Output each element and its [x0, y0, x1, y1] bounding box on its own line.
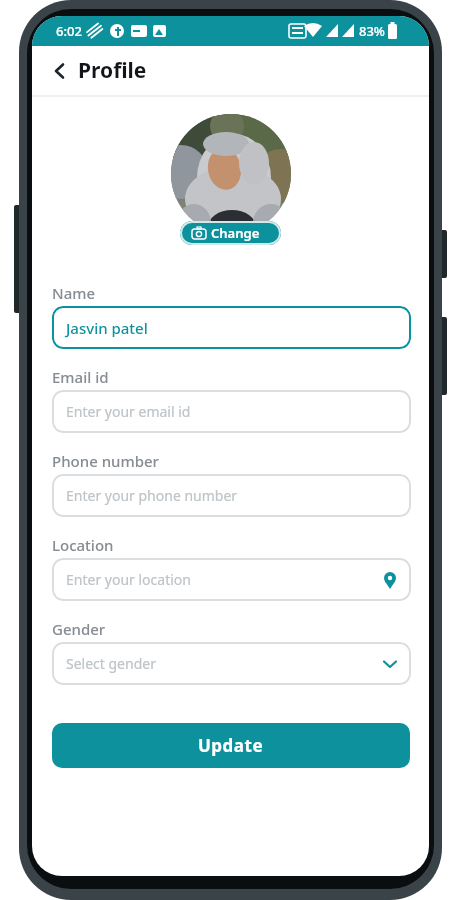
staticText: Enter your phone number — [66, 486, 238, 505]
staticText: Location — [52, 535, 114, 555]
staticText: Name — [52, 283, 96, 303]
staticText: Enter your location — [66, 570, 191, 589]
staticText: Change — [211, 224, 260, 242]
button[interactable]: Jasvin patel — [52, 306, 411, 349]
staticText: Profile — [78, 56, 147, 85]
staticText: Select gender — [66, 654, 156, 673]
button[interactable]: Update — [52, 723, 410, 768]
staticText: 6:02 — [56, 22, 82, 40]
staticText: Gender — [52, 619, 106, 639]
button[interactable]: Select gender — [52, 642, 411, 685]
button[interactable]: Enter your phone number — [52, 474, 411, 517]
button[interactable] — [52, 63, 68, 79]
staticText: Enter your email id — [66, 402, 191, 421]
staticText: Update — [198, 734, 264, 757]
staticText: Email id — [52, 367, 109, 387]
button[interactable]: Enter your location — [52, 558, 411, 601]
button[interactable]: Enter your email id — [52, 390, 411, 433]
staticText: Jasvin patel — [66, 318, 148, 338]
button[interactable]: Change — [180, 221, 281, 245]
staticText: 83% — [359, 22, 385, 40]
staticText: Phone number — [52, 451, 159, 471]
